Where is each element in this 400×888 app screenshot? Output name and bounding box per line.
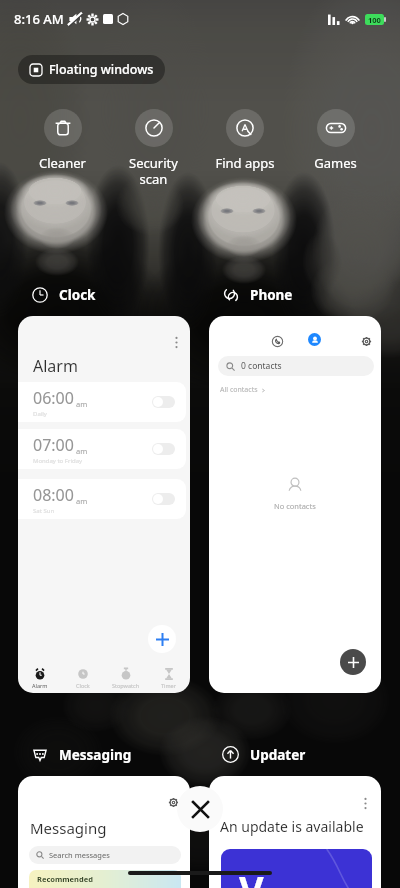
button[interactable]: An update is available xyxy=(209,776,381,888)
staticText: 0 contacts xyxy=(241,360,282,372)
button[interactable]: Find apps xyxy=(199,109,290,172)
button[interactable]: Contacts xyxy=(308,333,321,346)
staticText: Daily xyxy=(33,410,47,418)
button[interactable]: Stopwatch xyxy=(104,663,147,689)
staticText: Alarm xyxy=(33,355,78,377)
staticText: Games xyxy=(314,154,357,172)
button[interactable]: V xyxy=(221,849,372,888)
staticText: Recommended xyxy=(37,874,93,884)
staticText: Updater xyxy=(250,746,306,764)
staticText: Monday to Friday xyxy=(33,457,83,465)
staticText: 08:00 xyxy=(33,484,74,506)
button[interactable]: Alarm xyxy=(18,663,61,689)
staticText: am xyxy=(76,399,88,409)
button[interactable]: Security scan xyxy=(108,109,199,187)
staticText: Clock xyxy=(59,286,96,304)
button[interactable]: Add alarm xyxy=(148,625,176,653)
button[interactable]: Search messages xyxy=(29,846,181,864)
button[interactable]: 0 contacts xyxy=(218,356,374,376)
staticText: 06:00 xyxy=(33,387,74,409)
staticText: Messaging xyxy=(59,746,132,764)
button[interactable]: Settings xyxy=(358,333,374,349)
button[interactable]: Recommended xyxy=(29,870,181,888)
button[interactable]: Add contact xyxy=(340,649,366,675)
staticText: Search messages xyxy=(49,850,110,860)
button[interactable]: Close all xyxy=(177,786,223,832)
staticText: V xyxy=(239,863,264,888)
staticText: No contacts xyxy=(274,501,316,511)
button[interactable]: Calls xyxy=(209,316,381,693)
staticText: Timer xyxy=(161,682,176,689)
button[interactable]: Alarm xyxy=(18,316,190,693)
staticText: Sat Sun xyxy=(33,507,55,515)
button[interactable]: Games xyxy=(290,109,381,172)
staticText: Alarm xyxy=(32,682,48,689)
button[interactable]: Floating windows xyxy=(18,55,165,84)
staticText: 8:16 AM xyxy=(14,10,64,28)
staticText: Clock xyxy=(76,682,90,689)
staticText: 100 xyxy=(368,15,381,25)
button[interactable]: Calls xyxy=(269,333,285,349)
staticText: am xyxy=(76,446,88,456)
button[interactable]: Cleaner xyxy=(17,109,108,172)
button[interactable]: Messaging xyxy=(18,776,190,888)
staticText: All contacts xyxy=(220,385,258,395)
button[interactable]: 07:00 xyxy=(18,429,186,469)
button[interactable]: 08:00 xyxy=(18,479,186,519)
button[interactable]: 06:00 xyxy=(18,382,186,422)
staticText: Messaging xyxy=(30,818,107,838)
staticText: 07:00 xyxy=(33,434,74,456)
button[interactable]: Clock xyxy=(61,663,104,689)
staticText: Floating windows xyxy=(49,61,154,78)
staticText: Stopwatch xyxy=(112,682,140,689)
staticText: An update is available xyxy=(220,817,364,836)
staticText: Security scan xyxy=(129,154,178,187)
staticText: am xyxy=(76,496,88,506)
button[interactable]: Timer xyxy=(147,663,190,689)
staticText: Cleaner xyxy=(39,154,86,172)
staticText: Phone xyxy=(250,286,293,304)
staticText: Find apps xyxy=(215,154,275,172)
